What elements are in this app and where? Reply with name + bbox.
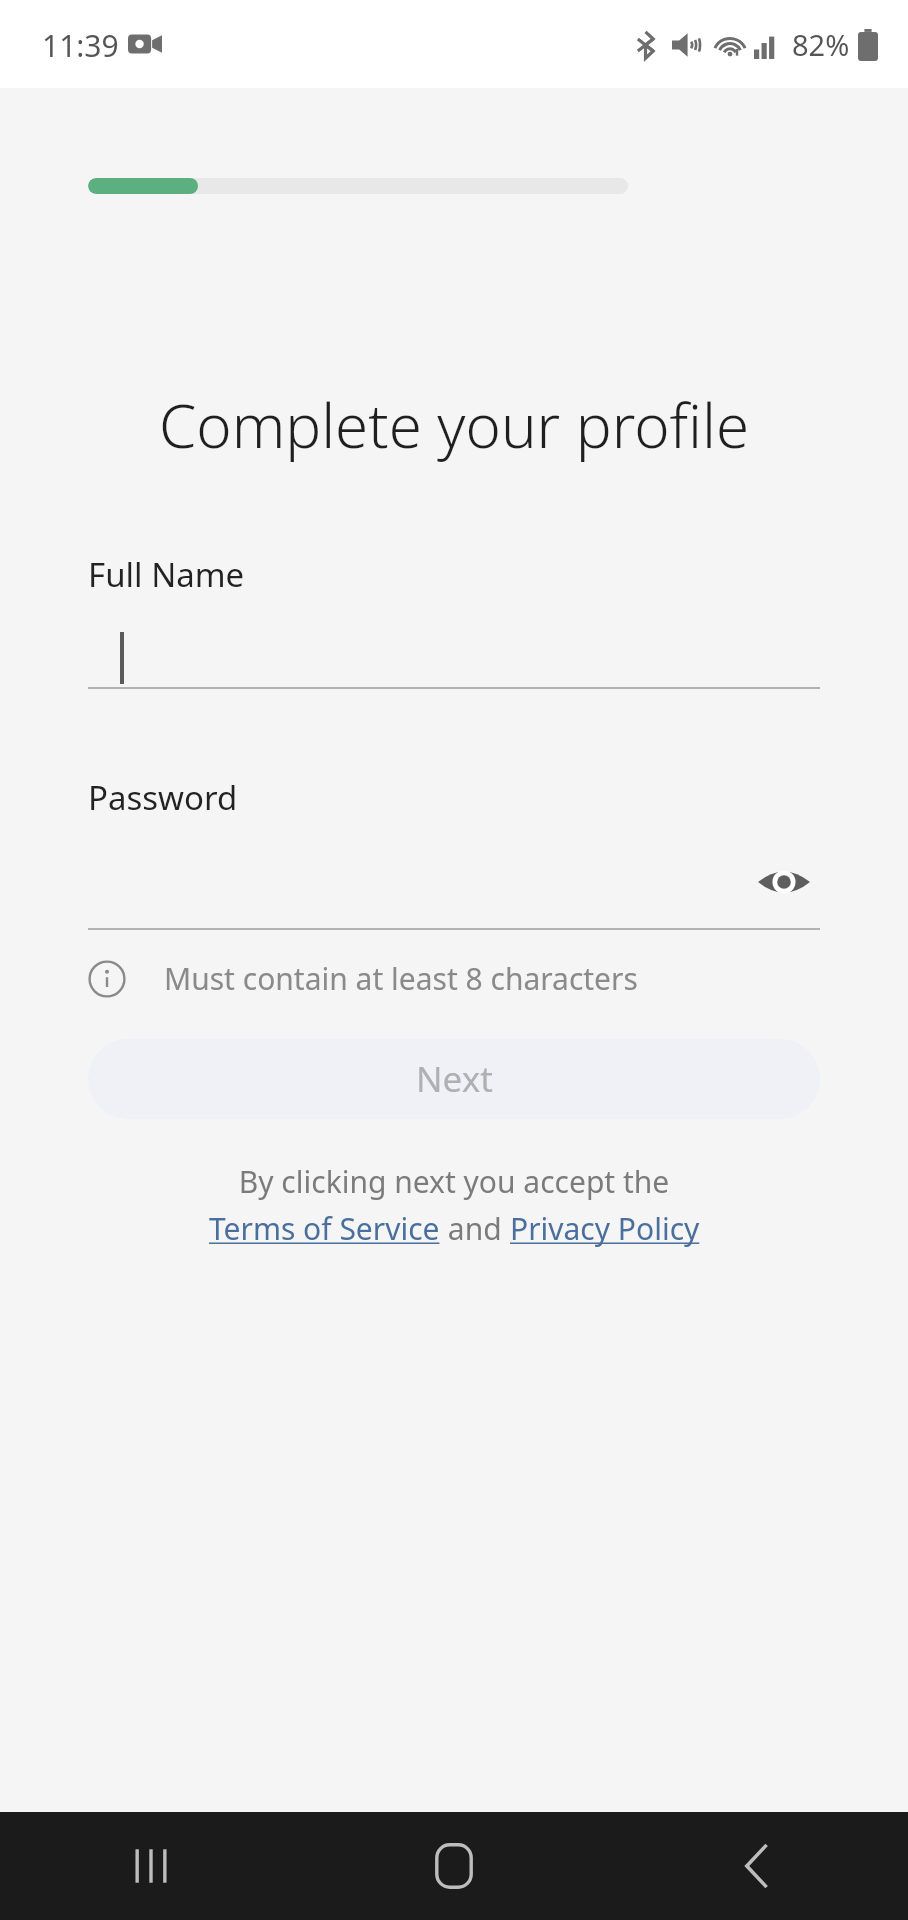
staticText: Next (416, 1055, 493, 1103)
staticText: and (440, 1208, 510, 1249)
button[interactable]: Terms of Service (209, 1208, 440, 1249)
staticText: Must contain at least 8 characters (164, 958, 638, 999)
staticText: Complete your profile (0, 384, 908, 466)
button[interactable]: Home (302, 1812, 605, 1920)
staticText: By clicking next you accept the (0, 1161, 908, 1202)
button[interactable]: Next (88, 1039, 820, 1119)
button[interactable]: Back (605, 1812, 908, 1920)
staticText: Password (88, 775, 238, 820)
button[interactable]: Privacy Policy (510, 1208, 700, 1249)
staticText: Privacy Policy (510, 1208, 700, 1249)
button[interactable]: Recent apps (0, 1812, 302, 1920)
staticText: 11:39 (42, 25, 119, 66)
staticText: 82% (792, 25, 850, 64)
button[interactable] (88, 627, 820, 689)
staticText: Terms of Service (209, 1208, 440, 1249)
staticText: Full Name (88, 552, 245, 597)
button[interactable]: Show password (748, 846, 820, 918)
